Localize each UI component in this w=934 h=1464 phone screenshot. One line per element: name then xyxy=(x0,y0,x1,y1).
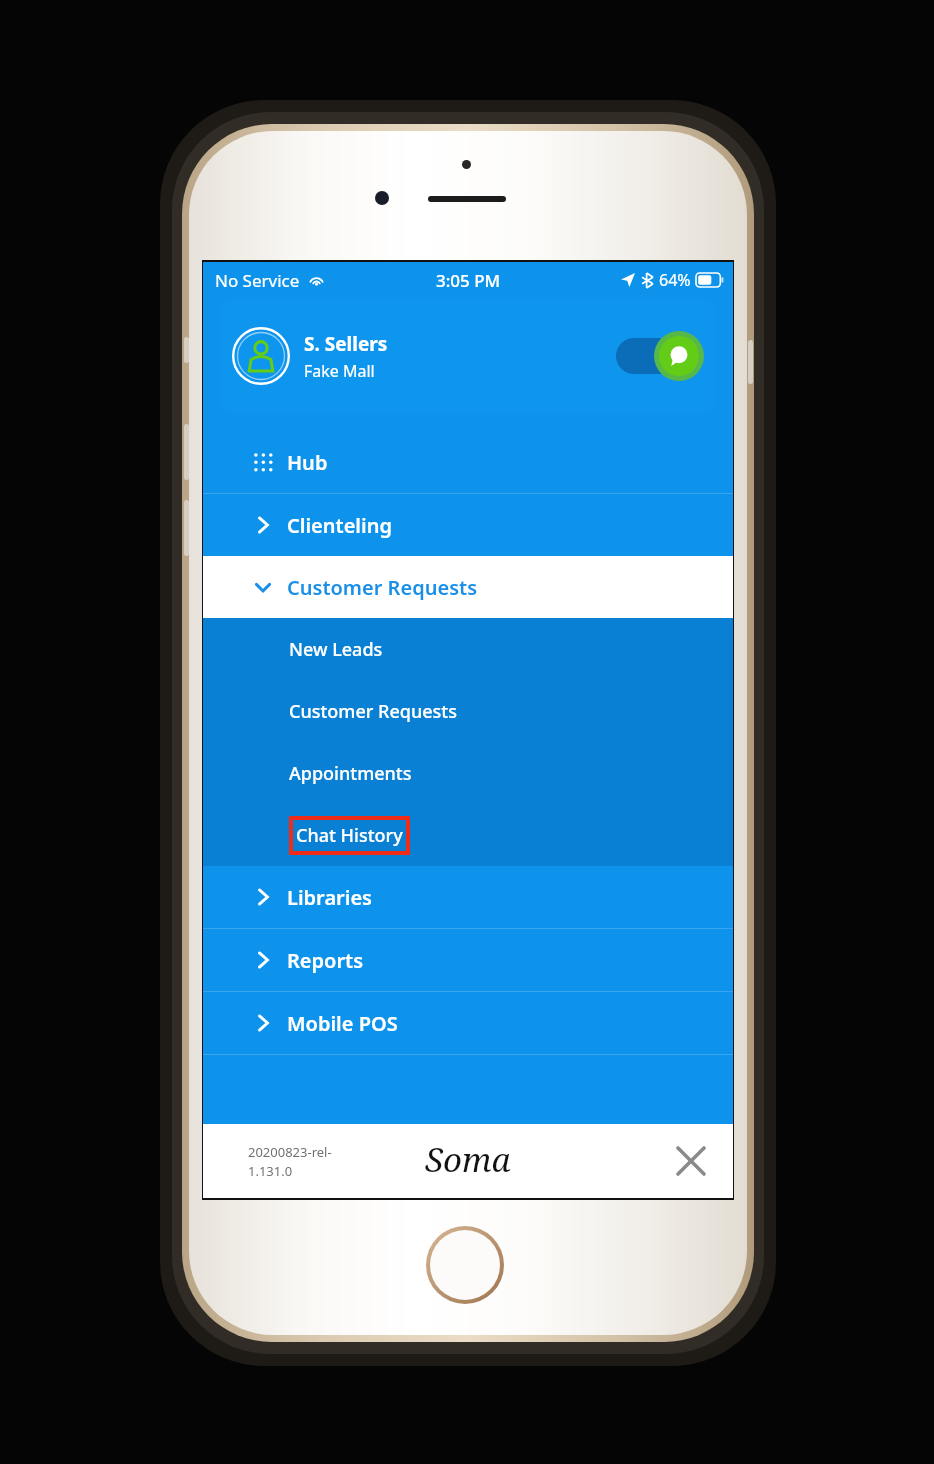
staticText: Libraries xyxy=(287,884,372,911)
button[interactable]: Clienteling xyxy=(203,494,733,556)
button[interactable]: Chat History xyxy=(203,804,733,866)
staticText: 3:05 PM xyxy=(436,269,501,292)
staticText: Mobile POS xyxy=(287,1010,398,1037)
button[interactable]: Customer Requests xyxy=(203,556,733,618)
button[interactable]: Close menu xyxy=(671,1141,711,1181)
button[interactable]: S. Sellers xyxy=(220,298,716,414)
staticText: Reports xyxy=(287,947,364,974)
staticText: Appointments xyxy=(289,761,412,786)
staticText: 64% xyxy=(659,269,691,291)
staticText: Clienteling xyxy=(287,512,392,539)
button[interactable]: New Leads xyxy=(203,618,733,680)
staticText: Hub xyxy=(287,449,328,476)
staticText: Customer Requests xyxy=(289,699,457,724)
button[interactable]: Hub xyxy=(203,431,733,493)
staticText: Fake Mall xyxy=(304,360,375,382)
staticText: Customer Requests xyxy=(287,574,477,601)
button[interactable]: Libraries xyxy=(203,866,733,928)
button[interactable]: Mobile POS xyxy=(203,992,733,1054)
staticText: 20200823-rel- 1.131.0 xyxy=(248,1143,332,1180)
staticText: No Service xyxy=(215,269,300,292)
staticText: Chat History xyxy=(296,823,403,848)
staticText: New Leads xyxy=(289,637,383,662)
button[interactable]: Toggle chat availability xyxy=(612,330,704,382)
button[interactable]: Appointments xyxy=(203,742,733,804)
staticText: S. Sellers xyxy=(304,331,388,357)
staticText: Soma xyxy=(425,1137,511,1182)
button[interactable]: Reports xyxy=(203,929,733,991)
button[interactable]: Customer Requests xyxy=(203,680,733,742)
